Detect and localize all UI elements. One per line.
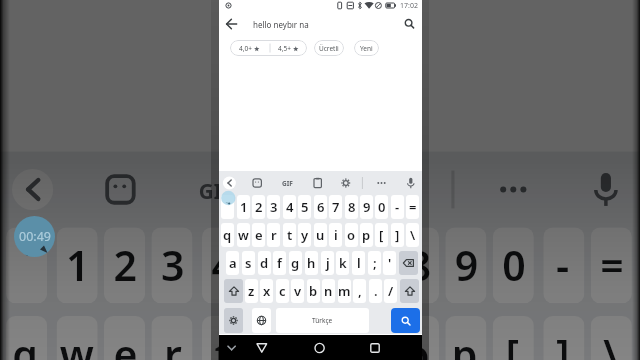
button[interactable]: i <box>347 316 388 360</box>
button[interactable] <box>399 251 418 275</box>
button[interactable]: f <box>273 251 286 275</box>
button[interactable]: 3 <box>267 195 280 219</box>
button[interactable]: g <box>289 251 302 275</box>
staticText: u <box>306 325 335 360</box>
button[interactable]: e <box>252 223 265 247</box>
button[interactable]: Ücretli <box>314 40 344 56</box>
button[interactable]: 7 <box>347 227 388 303</box>
button[interactable]: 4,0+ <box>230 40 307 56</box>
button[interactable]: 6 <box>300 227 341 303</box>
button[interactable]: 9 <box>360 195 373 219</box>
button[interactable] <box>252 308 271 333</box>
button[interactable]: ] <box>391 223 404 247</box>
button[interactable]: 7 <box>329 195 342 219</box>
staticText: Ücretli <box>319 44 339 53</box>
button[interactable]: o <box>345 223 358 247</box>
staticText: d <box>260 254 269 272</box>
staticText: GIF <box>199 177 234 205</box>
button[interactable]: = <box>591 227 632 303</box>
button[interactable]: - <box>543 227 584 303</box>
staticText: e <box>113 325 139 360</box>
button[interactable]: n <box>322 279 335 303</box>
button[interactable]: [ <box>375 223 388 247</box>
button[interactable]: t <box>202 316 243 360</box>
button[interactable]: p <box>360 223 373 247</box>
button[interactable]: r <box>151 316 192 360</box>
staticText: 3 <box>270 198 278 216</box>
button[interactable]: 5 <box>298 195 311 219</box>
button[interactable]: t <box>283 223 296 247</box>
button[interactable]: p <box>445 316 486 360</box>
button[interactable]: q <box>221 223 234 247</box>
button[interactable]: ' <box>383 251 396 275</box>
button[interactable]: 0 <box>493 227 534 303</box>
button[interactable]: d <box>258 251 271 275</box>
button[interactable]: / <box>384 279 397 303</box>
button[interactable]: k <box>336 251 349 275</box>
button[interactable] <box>224 308 243 333</box>
button[interactable]: q <box>6 316 47 360</box>
button[interactable]: 5 <box>249 227 290 303</box>
button[interactable]: y <box>298 223 311 247</box>
button[interactable]: u <box>300 316 341 360</box>
button[interactable]: 8 <box>398 227 439 303</box>
staticText: 00:49 <box>19 228 51 245</box>
button[interactable]: v <box>291 279 304 303</box>
button[interactable]: h <box>305 251 318 275</box>
button[interactable]: w <box>57 316 98 360</box>
staticText: \ <box>410 226 416 244</box>
button[interactable]: Yeni <box>354 40 379 56</box>
button[interactable] <box>224 279 243 303</box>
button[interactable]: j <box>321 251 334 275</box>
button[interactable]: 2 <box>104 227 145 303</box>
staticText: f <box>277 254 282 272</box>
button[interactable]: [ <box>493 316 534 360</box>
button[interactable]: ] <box>543 316 584 360</box>
button[interactable]: 9 <box>445 227 486 303</box>
button[interactable]: 6 <box>314 195 327 219</box>
button[interactable]: e <box>104 316 145 360</box>
staticText: / <box>388 282 394 300</box>
button[interactable]: 1 <box>57 227 98 303</box>
button[interactable]: ; <box>368 251 381 275</box>
button[interactable]: \ <box>591 316 632 360</box>
button[interactable]: 0 <box>375 195 388 219</box>
button[interactable]: 4 <box>202 227 243 303</box>
button[interactable]: , <box>353 279 366 303</box>
button[interactable] <box>391 308 420 333</box>
button[interactable]: 4 <box>283 195 296 219</box>
staticText: 5 <box>259 237 284 294</box>
button[interactable]: 1 <box>237 195 250 219</box>
button[interactable]: r <box>267 223 280 247</box>
button[interactable]: u <box>314 223 327 247</box>
button[interactable]: s <box>242 251 255 275</box>
button[interactable]: i <box>329 223 342 247</box>
button[interactable]: 8 <box>345 195 358 219</box>
button[interactable]: ` <box>6 227 47 303</box>
staticText: k <box>339 254 347 272</box>
button[interactable]: w <box>237 223 250 247</box>
button[interactable]: Türkçe <box>276 308 369 333</box>
button[interactable]: o <box>398 316 439 360</box>
button[interactable]: ` <box>221 195 234 219</box>
button[interactable]: y <box>249 316 290 360</box>
button[interactable]: z <box>245 279 258 303</box>
button[interactable]: \ <box>406 223 419 247</box>
button[interactable]: - <box>391 195 404 219</box>
button[interactable]: c <box>276 279 289 303</box>
button[interactable]: = <box>406 195 419 219</box>
button[interactable]: m <box>338 279 351 303</box>
staticText: 9 <box>363 198 371 216</box>
button[interactable]: . <box>369 279 382 303</box>
staticText: 4 <box>286 198 294 216</box>
staticText: q <box>223 226 232 244</box>
button[interactable]: l <box>352 251 365 275</box>
button[interactable]: x <box>260 279 273 303</box>
button[interactable] <box>400 279 419 303</box>
button[interactable]: 2 <box>252 195 265 219</box>
staticText: 17:02 <box>400 1 418 10</box>
button[interactable]: a <box>226 251 239 275</box>
button[interactable]: 3 <box>151 227 192 303</box>
button[interactable]: b <box>307 279 320 303</box>
staticText: 3 <box>161 237 186 294</box>
